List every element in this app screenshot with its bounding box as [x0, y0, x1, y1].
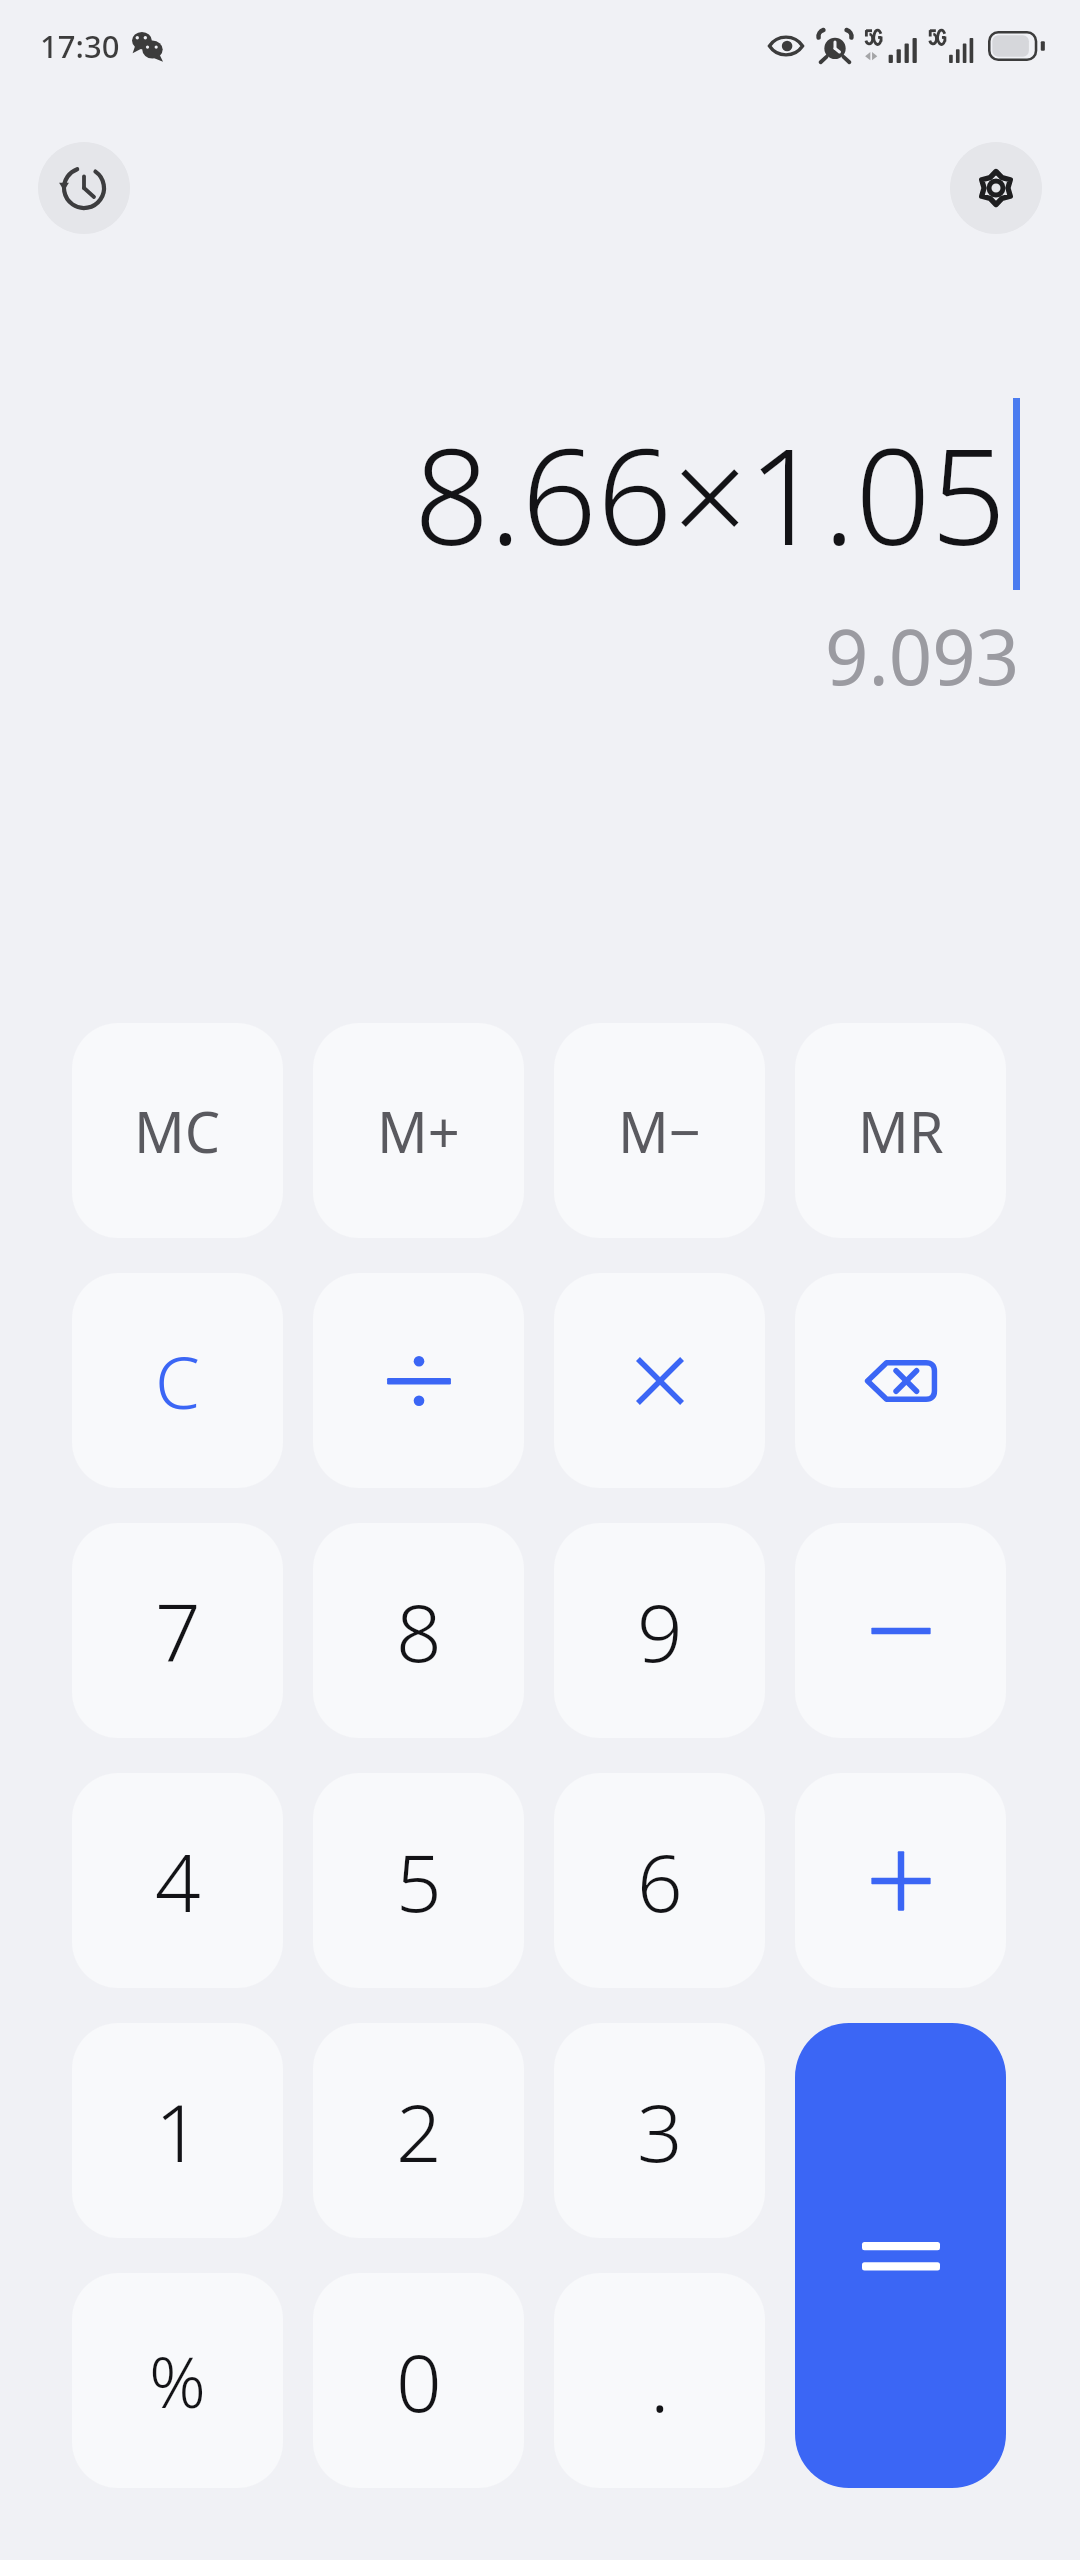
staticText: 7	[155, 1576, 201, 1685]
staticText: 8.66×1.05	[414, 404, 1007, 584]
button[interactable]: 0	[313, 2273, 524, 2488]
button[interactable]: 5	[313, 1773, 524, 1988]
staticText: 9	[637, 1576, 683, 1685]
staticText: 4	[155, 1826, 201, 1935]
staticText: 1	[155, 2076, 201, 2185]
button[interactable]: C	[72, 1273, 283, 1488]
button[interactable]: Plus	[795, 1773, 1006, 1988]
staticText: M+	[377, 1093, 460, 1169]
button[interactable]: Multiply	[554, 1273, 765, 1488]
button[interactable]: 8	[313, 1523, 524, 1738]
button[interactable]: M−	[554, 1023, 765, 1238]
button[interactable]: 2	[313, 2023, 524, 2238]
staticText: 17:30	[40, 25, 120, 67]
button[interactable]: %	[72, 2273, 283, 2488]
staticText: 3	[637, 2076, 683, 2185]
button[interactable]: .	[554, 2273, 765, 2488]
button[interactable]: History	[38, 142, 130, 234]
staticText: 0	[396, 2326, 442, 2435]
button[interactable]: MC	[72, 1023, 283, 1238]
button[interactable]: 6	[554, 1773, 765, 1988]
button[interactable]: 7	[72, 1523, 283, 1738]
button[interactable]: Equals	[795, 2023, 1006, 2488]
staticText: MC	[134, 1093, 221, 1169]
staticText: M−	[618, 1093, 701, 1169]
button[interactable]: M+	[313, 1023, 524, 1238]
button[interactable]: Settings	[950, 142, 1042, 234]
button[interactable]: MR	[795, 1023, 1006, 1238]
button[interactable]: Minus	[795, 1523, 1006, 1738]
staticText: MR	[858, 1093, 944, 1169]
staticText: 9.093	[825, 604, 1020, 708]
staticText: 5	[396, 1826, 442, 1935]
staticText: 8	[396, 1576, 442, 1685]
button[interactable]: 4	[72, 1773, 283, 1988]
button[interactable]: 1	[72, 2023, 283, 2238]
staticText: .	[650, 2326, 670, 2435]
button[interactable]: Divide	[313, 1273, 524, 1488]
staticText: %	[149, 2333, 206, 2428]
staticText: 6	[637, 1826, 683, 1935]
staticText: 2	[396, 2076, 442, 2185]
button[interactable]: 3	[554, 2023, 765, 2238]
staticText: C	[155, 1332, 200, 1430]
button[interactable]: Backspace	[795, 1273, 1006, 1488]
button[interactable]: 9	[554, 1523, 765, 1738]
